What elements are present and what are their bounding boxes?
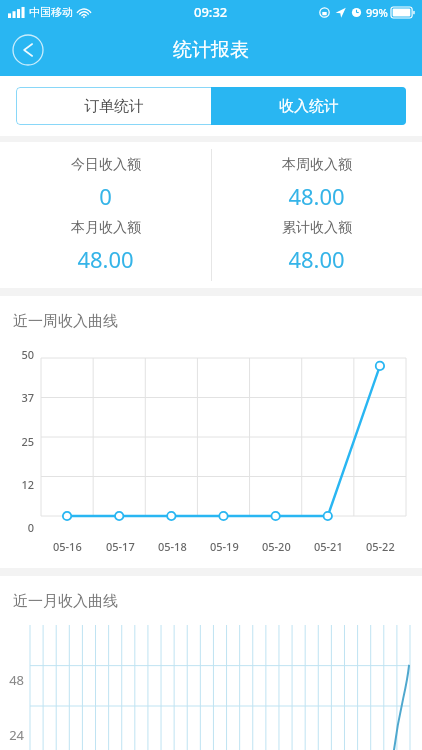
staticText: 0 xyxy=(99,181,112,211)
staticText: 统计报表 xyxy=(173,38,249,62)
staticText: 05-20 xyxy=(262,539,291,554)
staticText: 订单统计 xyxy=(84,97,144,116)
staticText: 收入统计 xyxy=(279,97,339,116)
button[interactable]: Back xyxy=(12,34,44,66)
staticText: 累计收入额 xyxy=(282,219,352,237)
staticText: 本月收入额 xyxy=(71,219,141,237)
staticText: 99% xyxy=(366,5,388,20)
staticText: 05-21 xyxy=(314,539,343,554)
button[interactable]: 本周收入额 xyxy=(211,156,422,211)
button[interactable]: 今日收入额 xyxy=(0,156,211,211)
staticText: 05-22 xyxy=(366,539,395,554)
staticText: 05-16 xyxy=(53,539,82,554)
staticText: 48 xyxy=(0,671,24,689)
staticText: 0 xyxy=(0,520,34,535)
button[interactable]: 收入统计 xyxy=(211,87,406,125)
staticText: 近一月收入曲线 xyxy=(13,592,118,611)
staticText: 05-18 xyxy=(158,539,187,554)
staticText: 12 xyxy=(0,477,34,492)
staticText: 05-19 xyxy=(210,539,239,554)
button[interactable]: 订单统计 xyxy=(16,87,211,125)
staticText: 近一周收入曲线 xyxy=(13,312,118,331)
staticText: 今日收入额 xyxy=(71,156,141,174)
staticText: 48.00 xyxy=(288,181,345,211)
staticText: 37 xyxy=(0,390,34,405)
staticText: 本周收入额 xyxy=(282,156,352,174)
staticText: 25 xyxy=(0,434,34,449)
button[interactable]: 累计收入额 xyxy=(211,219,422,274)
staticText: 48.00 xyxy=(288,244,345,274)
staticText: 05-17 xyxy=(106,539,135,554)
staticText: 48.00 xyxy=(77,244,134,274)
button[interactable]: 本月收入额 xyxy=(0,219,211,274)
staticText: 中国移动 xyxy=(29,5,73,19)
staticText: 50 xyxy=(0,347,34,362)
staticText: 09:32 xyxy=(194,3,228,21)
staticText: 24 xyxy=(0,726,24,744)
